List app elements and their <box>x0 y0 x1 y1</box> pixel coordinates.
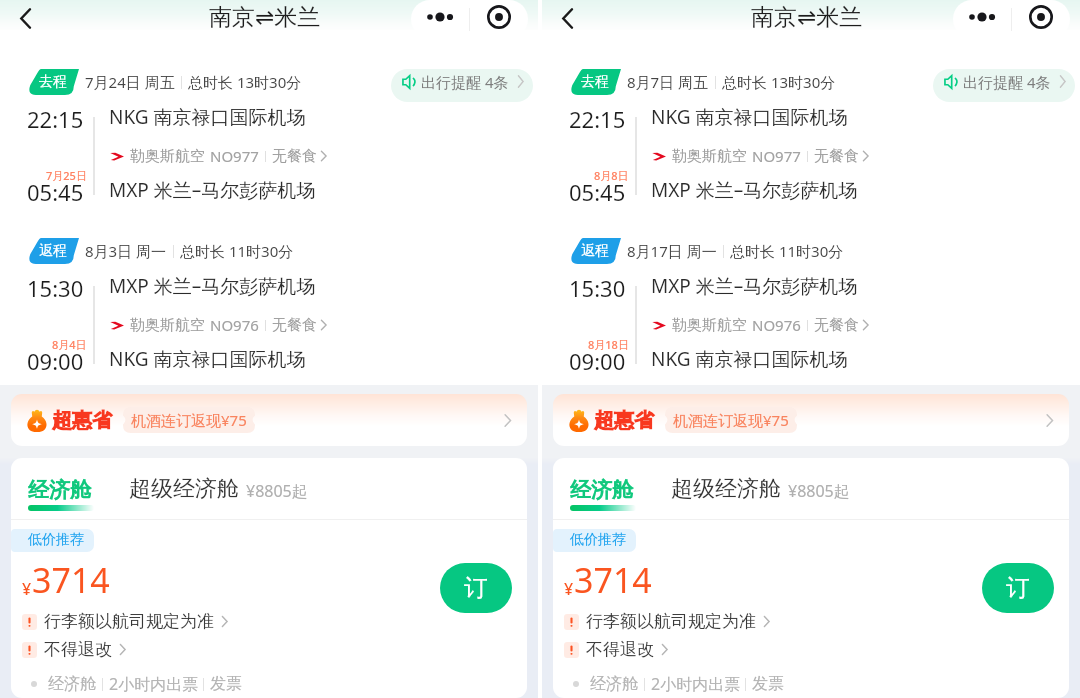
button[interactable]: 不得退改 <box>22 639 129 660</box>
staticText: 09:00 <box>569 346 626 374</box>
staticText: 行李额以航司规定为准 <box>44 611 214 632</box>
staticText: 行李额以航司规定为准 <box>586 611 756 632</box>
staticText: 勒奥斯航空 <box>130 316 205 335</box>
staticText: 勒奥斯航空 <box>130 147 205 166</box>
staticText: 南京⇌米兰 <box>751 3 863 32</box>
staticText: 去程 <box>581 73 609 91</box>
staticText: 去程 <box>39 73 67 91</box>
staticText: 8月18日 <box>588 337 629 352</box>
staticText: NKG 南京禄口国际机场 <box>109 104 306 130</box>
staticText: 3714 <box>32 557 110 603</box>
staticText: 2小时内出票 <box>651 673 741 695</box>
staticText: 无餐食 <box>272 147 317 166</box>
staticText: 无餐食 <box>814 316 859 335</box>
staticText: 总时长 11时30分 <box>730 241 844 261</box>
button[interactable]: 勒奥斯航空 <box>110 146 330 166</box>
staticText: 超级经济舱 <box>671 475 781 503</box>
staticText: 机酒连订返现¥75 <box>131 410 247 430</box>
button[interactable]: 不得退改 <box>564 639 671 660</box>
staticText: 南京⇌米兰 <box>209 3 321 32</box>
staticText: 7月25日 <box>46 168 87 183</box>
staticText: 经济舱 <box>590 674 638 694</box>
button[interactable]: Back <box>560 8 575 29</box>
button[interactable]: 勒奥斯航空 <box>652 146 872 166</box>
staticText: 无餐食 <box>272 316 317 335</box>
staticText: 订 <box>464 573 488 603</box>
staticText: 15:30 <box>569 273 626 299</box>
staticText: 8月17日 周一 <box>627 241 717 261</box>
staticText: 2小时内出票 <box>109 673 199 695</box>
button[interactable]: 勒奥斯航空 <box>110 315 330 335</box>
button[interactable]: 行李额以航司规定为准 <box>564 611 773 632</box>
staticText: 05:45 <box>569 177 626 205</box>
staticText: ¥8805起 <box>246 480 308 502</box>
staticText: 发票 <box>752 674 784 694</box>
staticText: 低价推荐 <box>28 531 84 549</box>
staticText: 8月8日 <box>594 168 629 183</box>
staticText: ¥ <box>564 578 574 600</box>
staticText: 无餐食 <box>814 147 859 166</box>
staticText: 订 <box>1006 573 1030 603</box>
staticText: NO977 <box>752 146 801 166</box>
staticText: ¥ <box>22 578 32 600</box>
button[interactable]: More options <box>953 0 1011 38</box>
staticText: 8月7日 周五 <box>627 72 709 92</box>
button[interactable]: Back <box>18 8 33 29</box>
button[interactable]: 超惠省 <box>11 394 527 446</box>
staticText: NKG 南京禄口国际机场 <box>651 346 848 372</box>
staticText: ¥8805起 <box>788 480 850 502</box>
staticText: NO976 <box>752 315 801 335</box>
staticText: NO976 <box>210 315 259 335</box>
staticText: 22:15 <box>569 104 626 130</box>
staticText: 出行提醒 4条 <box>421 72 509 92</box>
button[interactable]: 行李额以航司规定为准 <box>22 611 231 632</box>
staticText: NKG 南京禄口国际机场 <box>651 104 848 130</box>
button[interactable]: Locate <box>470 0 528 38</box>
staticText: 09:00 <box>27 346 84 374</box>
staticText: 不得退改 <box>586 639 654 660</box>
staticText: 发票 <box>210 674 242 694</box>
button[interactable]: 出行提醒 4条 <box>391 69 533 102</box>
staticText: 总时长 13时30分 <box>188 72 302 92</box>
staticText: MXP 米兰–马尔彭萨机场 <box>109 273 316 299</box>
staticText: 总时长 11时30分 <box>180 241 294 261</box>
staticText: 8月3日 周一 <box>85 241 167 261</box>
button[interactable]: 出行提醒 4条 <box>933 69 1075 102</box>
staticText: MXP 米兰–马尔彭萨机场 <box>651 273 858 299</box>
staticText: 7月24日 周五 <box>85 72 175 92</box>
staticText: 总时长 13时30分 <box>722 72 836 92</box>
staticText: 出行提醒 4条 <box>963 72 1051 92</box>
staticText: 超惠省 <box>594 408 654 433</box>
staticText: 不得退改 <box>44 639 112 660</box>
staticText: 8月4日 <box>52 337 87 352</box>
staticText: NKG 南京禄口国际机场 <box>109 346 306 372</box>
button[interactable]: More options <box>411 0 469 38</box>
staticText: MXP 米兰–马尔彭萨机场 <box>109 177 316 203</box>
staticText: 经济舱 <box>570 477 633 503</box>
staticText: 05:45 <box>27 177 84 205</box>
staticText: 低价推荐 <box>570 531 626 549</box>
staticText: MXP 米兰–马尔彭萨机场 <box>651 177 858 203</box>
staticText: 勒奥斯航空 <box>672 316 747 335</box>
button[interactable]: 订 <box>982 563 1054 613</box>
staticText: 超惠省 <box>52 408 112 433</box>
button[interactable]: Locate <box>1012 0 1070 38</box>
button[interactable]: 勒奥斯航空 <box>652 315 872 335</box>
staticText: 经济舱 <box>48 674 96 694</box>
staticText: 返程 <box>39 242 67 260</box>
staticText: 15:30 <box>27 273 84 299</box>
staticText: 22:15 <box>27 104 84 130</box>
staticText: 机酒连订返现¥75 <box>673 410 789 430</box>
staticText: NO977 <box>210 146 259 166</box>
button[interactable]: 超惠省 <box>553 394 1069 446</box>
staticText: 经济舱 <box>28 477 91 503</box>
staticText: 勒奥斯航空 <box>672 147 747 166</box>
button[interactable]: 订 <box>440 563 512 613</box>
staticText: 3714 <box>574 557 652 603</box>
staticText: 超级经济舱 <box>129 475 239 503</box>
staticText: 返程 <box>581 242 609 260</box>
